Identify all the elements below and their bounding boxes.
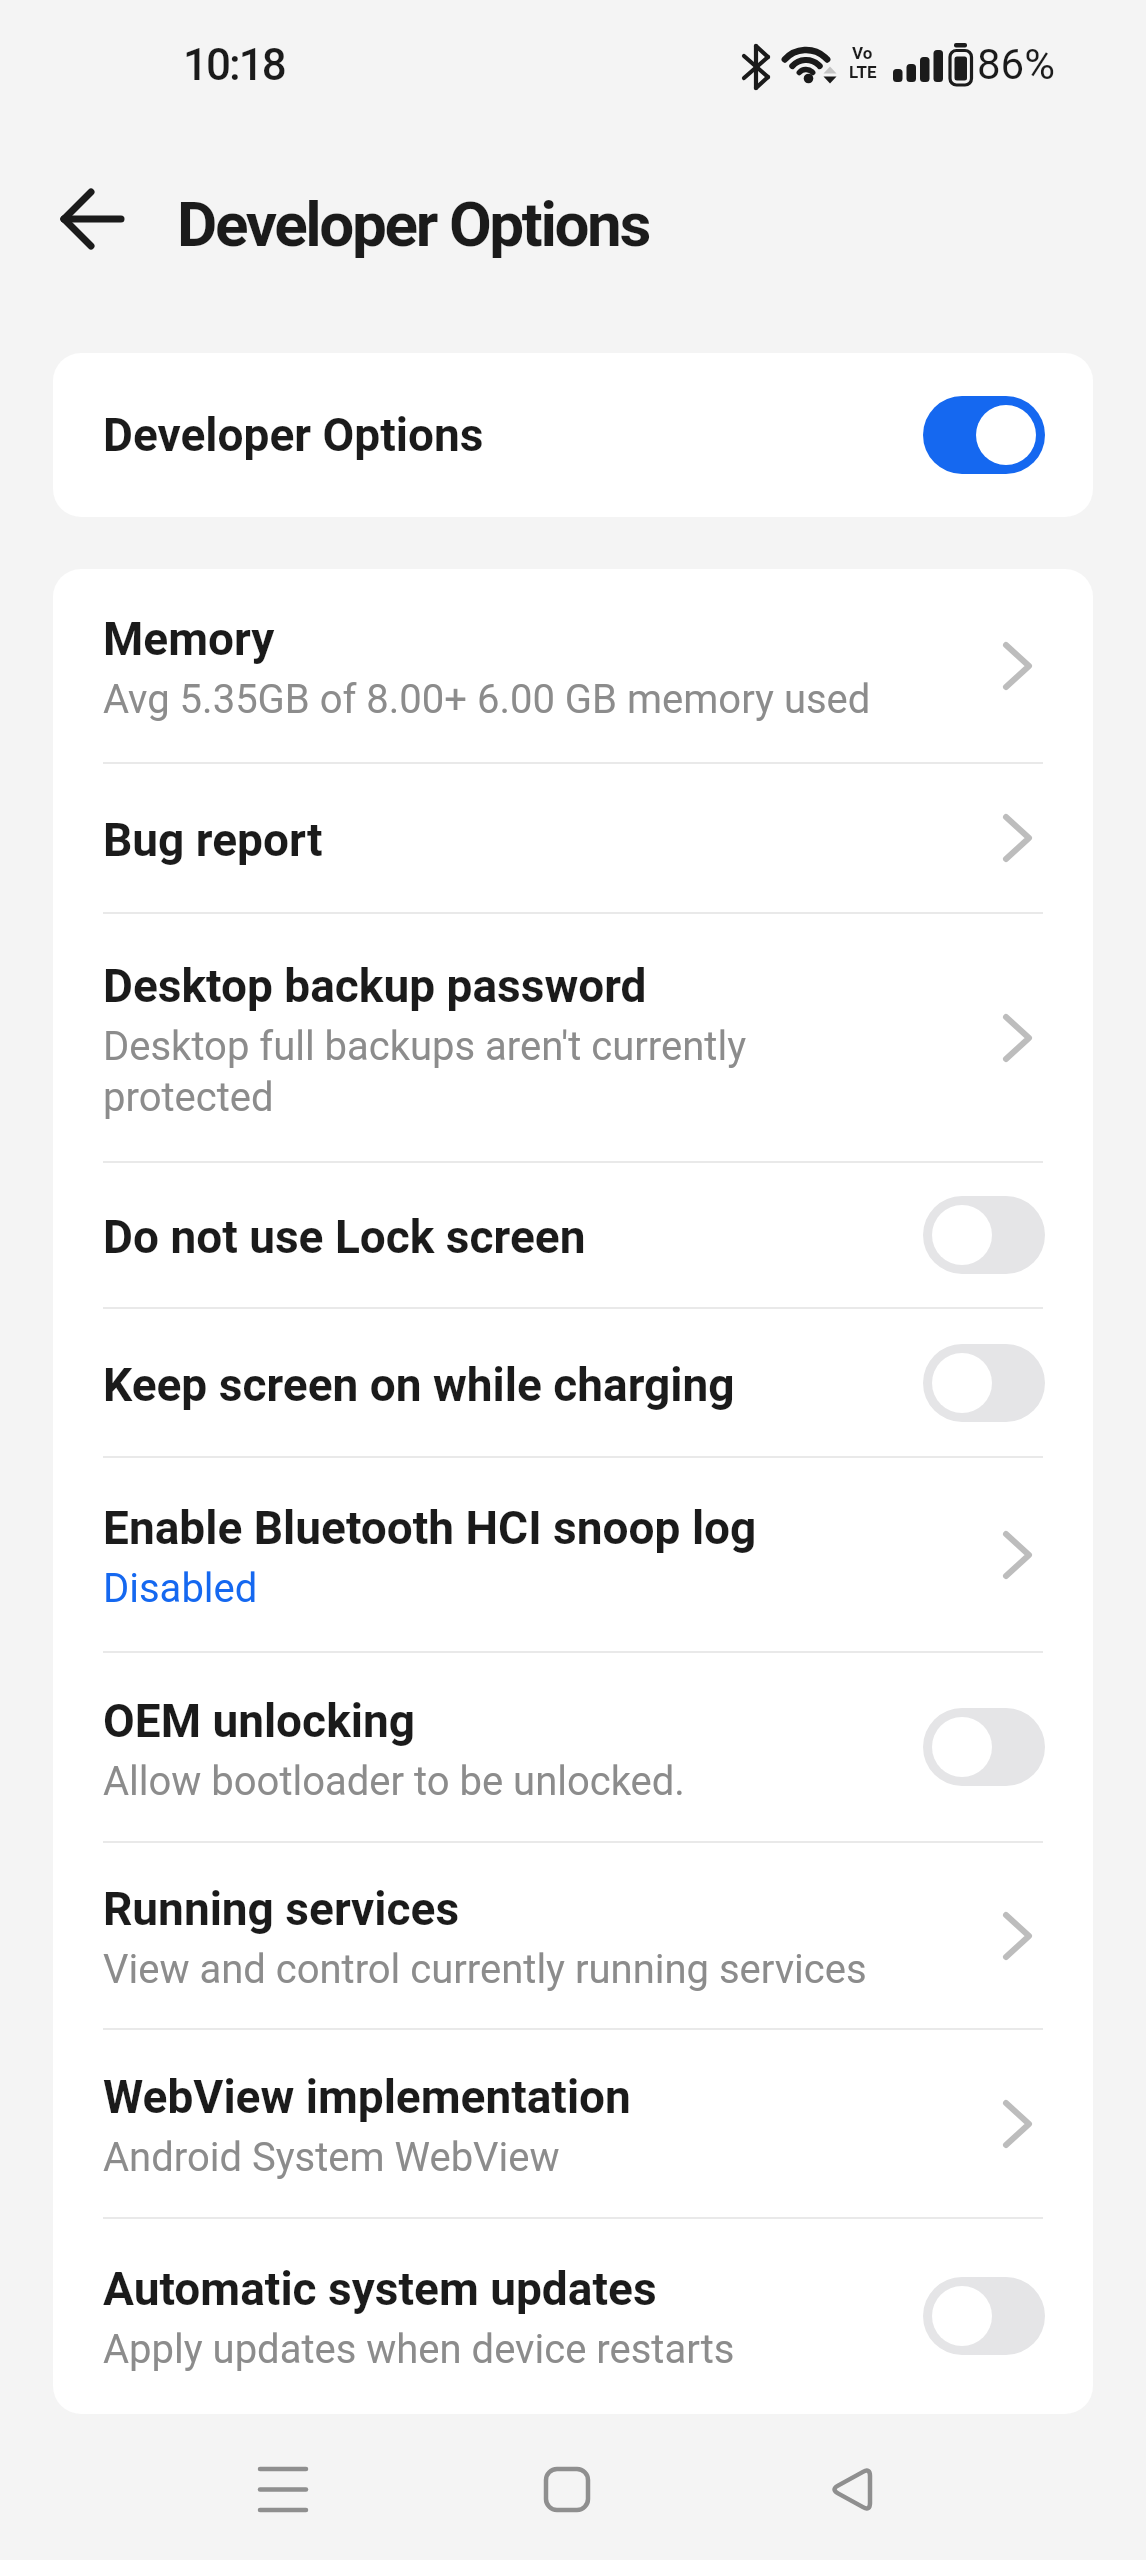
staticText: Android System WebView [103,2134,560,2181]
button[interactable] [923,2277,1045,2355]
staticText: Allow bootloader to be unlocked. [103,1758,685,1805]
staticText: Keep screen on while charging [103,1358,735,1412]
button[interactable]: Desktop backup password [53,914,1093,1161]
button[interactable]: Developer Options [53,353,1093,517]
staticText: Running services [103,1882,460,1936]
button[interactable]: Running services [53,1843,1093,2028]
button[interactable]: Do not use Lock screen [53,1163,1093,1307]
staticText: Memory [103,612,275,666]
button[interactable]: Enable Bluetooth HCI snoop log [53,1458,1093,1651]
button[interactable]: Keep screen on while charging [53,1309,1093,1456]
staticText: View and control currently running servi… [103,1946,867,1993]
staticText: 10:18 [183,39,285,91]
staticText: Developer Options [177,188,649,261]
button[interactable]: WebView implementation [53,2030,1093,2217]
button[interactable] [507,2430,627,2550]
button[interactable]: Memory [53,569,1093,762]
button[interactable] [223,2430,343,2550]
staticText: Vo [852,43,873,63]
button[interactable]: Bug report [53,764,1093,912]
staticText: Bug report [103,813,323,867]
button[interactable] [923,1344,1045,1422]
staticText: Do not use Lock screen [103,1210,586,1264]
staticText: Desktop full backups aren't currently pr… [103,1023,747,1120]
staticText: Enable Bluetooth HCI snoop log [103,1501,757,1555]
staticText: OEM unlocking [103,1694,415,1748]
staticText: LTE [849,62,877,82]
staticText: Avg 5.35GB of 8.00+ 6.00 GB memory used [103,676,871,723]
button[interactable] [923,1708,1045,1786]
staticText: Apply updates when device restarts [103,2326,735,2373]
button[interactable] [923,1196,1045,1274]
button[interactable] [790,2430,910,2550]
staticText: Automatic system updates [103,2262,657,2316]
button[interactable] [923,396,1045,474]
button[interactable]: Automatic system updates [53,2219,1093,2412]
staticText: WebView implementation [103,2070,631,2124]
button[interactable]: OEM unlocking [53,1653,1093,1841]
staticText: Disabled [103,1565,258,1612]
staticText: Developer Options [103,408,484,462]
staticText: Desktop backup password [103,959,647,1013]
button[interactable] [44,179,140,259]
staticText: 86% [977,40,1055,89]
